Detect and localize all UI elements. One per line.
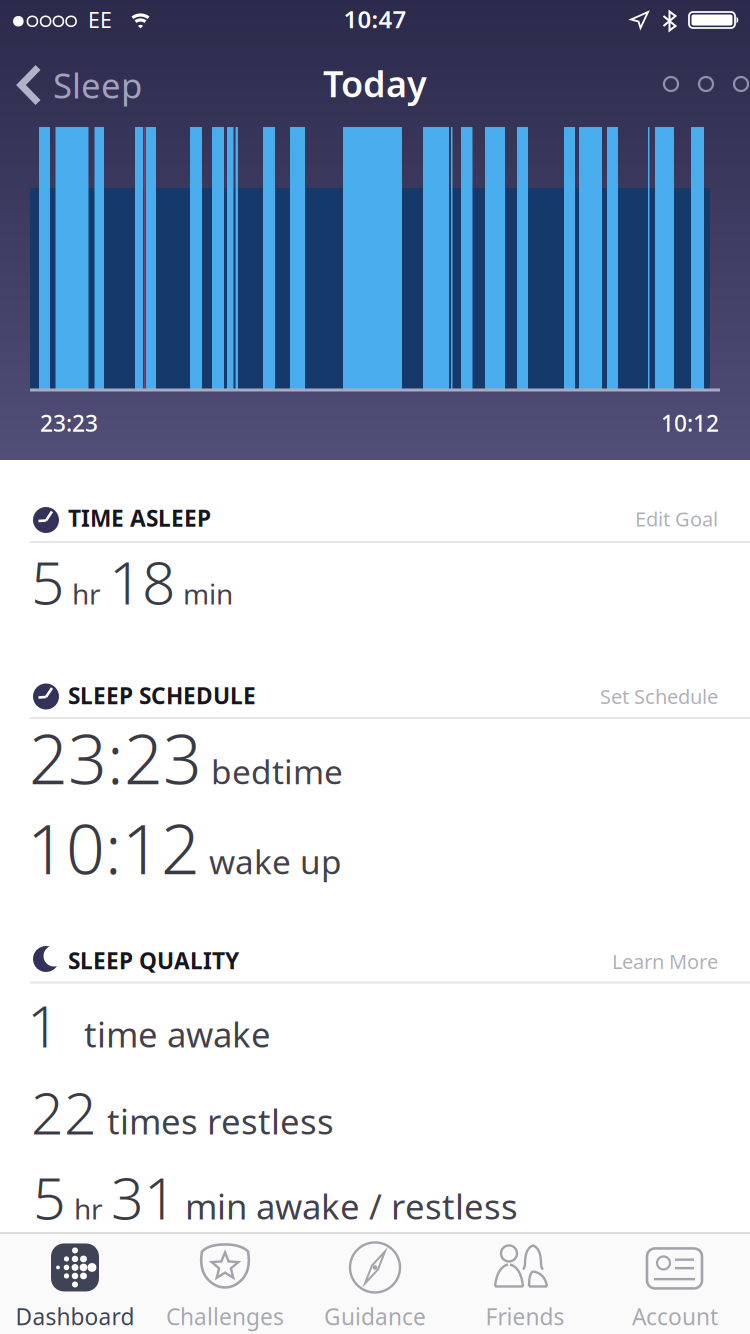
staticText: min awake / restless — [185, 1183, 518, 1229]
button[interactable]: Edit Goal — [635, 505, 718, 532]
staticText: 10:47 — [343, 3, 406, 35]
staticText: Account — [632, 1301, 718, 1331]
staticText: 10:12 — [27, 803, 200, 893]
staticText: wake up — [209, 839, 342, 883]
staticText: Guidance — [324, 1301, 426, 1331]
staticText: SLEEP SCHEDULE — [68, 680, 256, 711]
staticText: times restless — [107, 1098, 334, 1144]
staticText: 18 — [109, 543, 175, 621]
staticText: Today — [323, 59, 427, 107]
staticText: Sleep — [53, 62, 142, 108]
staticText: Friends — [485, 1301, 564, 1331]
staticText: hr — [74, 1190, 103, 1227]
staticText: 31 — [111, 1159, 177, 1235]
staticText: hr — [72, 575, 101, 612]
button[interactable]: Challenges — [150, 1232, 300, 1334]
staticText: Learn More — [612, 948, 718, 974]
staticText: EE — [88, 5, 112, 34]
button[interactable]: Account — [600, 1232, 750, 1334]
staticText: Edit Goal — [635, 505, 718, 532]
staticText: 23:23 — [40, 408, 98, 438]
staticText: 5 — [31, 543, 64, 621]
staticText: 10:12 — [661, 408, 719, 438]
staticText: SLEEP QUALITY — [68, 945, 239, 976]
staticText: 23:23 — [29, 713, 202, 803]
staticText: min — [183, 575, 233, 612]
button[interactable]: Sleep — [17, 62, 142, 108]
button[interactable] — [664, 77, 748, 91]
staticText: 1 — [27, 987, 60, 1063]
staticText: Dashboard — [15, 1301, 134, 1331]
staticText: Challenges — [166, 1301, 284, 1331]
staticText: time awake — [84, 1011, 271, 1057]
button[interactable]: Dashboard — [0, 1232, 150, 1334]
button[interactable]: Guidance — [300, 1232, 450, 1334]
staticText: 22 — [31, 1074, 97, 1150]
staticText: bedtime — [211, 749, 343, 793]
button[interactable]: Learn More — [612, 948, 718, 974]
button[interactable]: Friends — [450, 1232, 600, 1334]
staticText: TIME ASLEEP — [68, 503, 211, 533]
staticText: Set Schedule — [600, 683, 718, 709]
button[interactable]: Set Schedule — [600, 683, 718, 709]
staticText: 5 — [33, 1159, 66, 1235]
